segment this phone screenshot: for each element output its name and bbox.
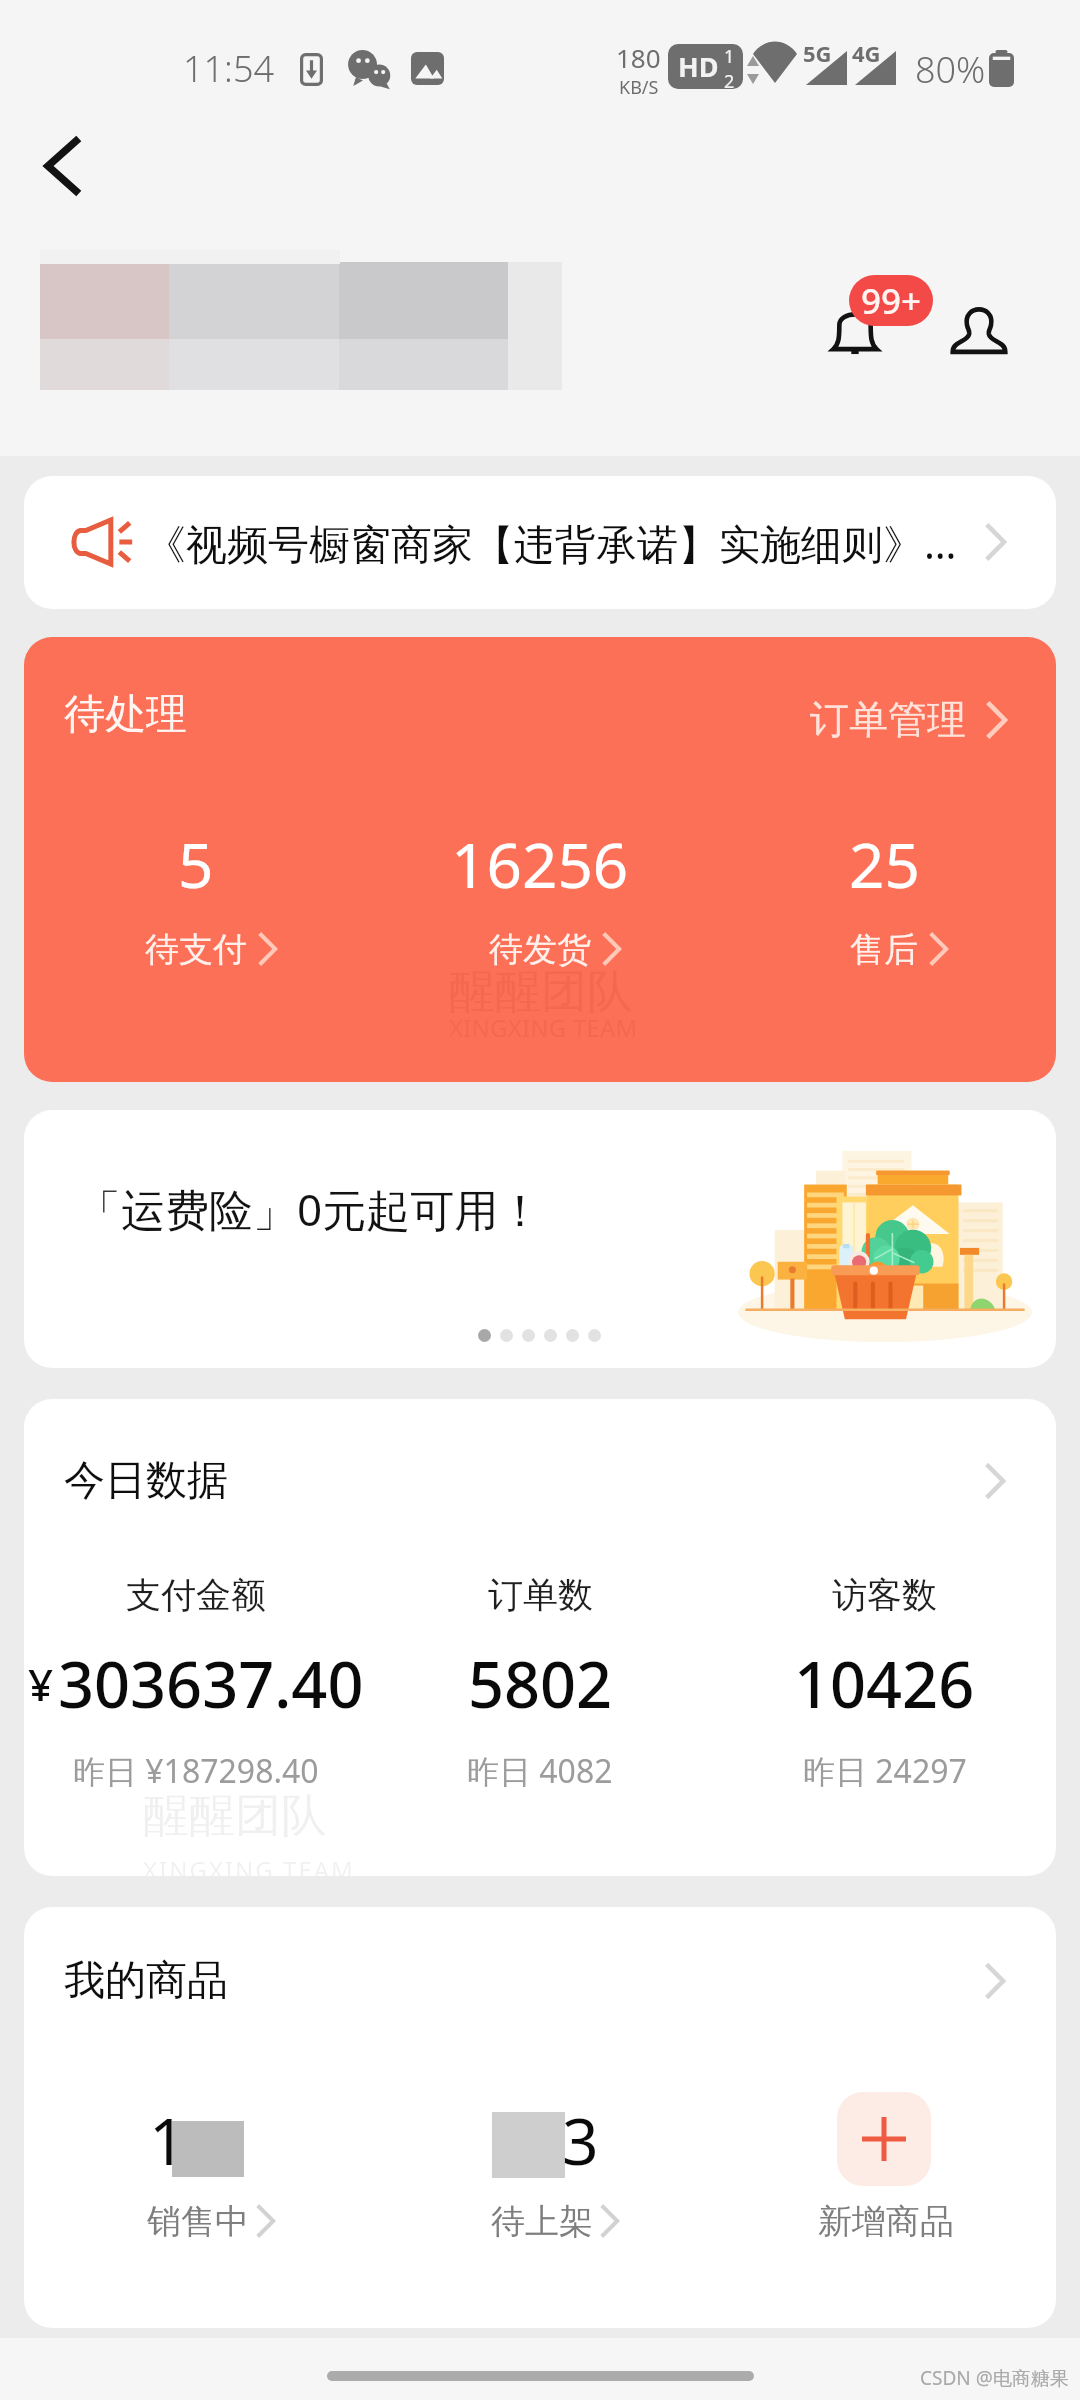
staticText: 订单数 bbox=[488, 1573, 593, 1617]
staticText: ¥ bbox=[28, 1654, 54, 1714]
staticText: 待支付 bbox=[145, 928, 247, 971]
staticText: 16256 bbox=[451, 822, 629, 906]
staticText: 销售中 bbox=[147, 2200, 249, 2243]
button[interactable]: 我的商品 bbox=[64, 1955, 1005, 2007]
button[interactable]: Notifications bbox=[820, 264, 945, 368]
staticText: 昨日 4082 bbox=[467, 1749, 613, 1793]
staticText: 1 bbox=[724, 44, 735, 69]
staticText: 5G bbox=[803, 38, 832, 68]
staticText: 醒醒团队 bbox=[143, 1787, 327, 1845]
staticText: 新增商品 bbox=[818, 2200, 954, 2243]
staticText: 《视频号橱窗商家【违背承诺】实施细则》… bbox=[145, 515, 957, 571]
staticText: 1 bbox=[149, 2097, 186, 2184]
button[interactable]: 《视频号橱窗商家【违背承诺】实施细则》… bbox=[24, 476, 1056, 609]
staticText: 支付金额 bbox=[126, 1573, 266, 1617]
staticText: 4G bbox=[852, 38, 881, 68]
staticText: 303637.40 bbox=[58, 1641, 364, 1727]
staticText: 昨日 24297 bbox=[803, 1749, 967, 1793]
staticText: 180 bbox=[616, 40, 661, 75]
button[interactable]: 「运费险」0元起可用！ bbox=[24, 1110, 1056, 1368]
button[interactable]: Back bbox=[20, 124, 104, 208]
staticText: 待上架 bbox=[491, 2200, 593, 2243]
button[interactable]: 今日数据 bbox=[64, 1455, 1005, 1507]
staticText: 25 bbox=[849, 822, 920, 906]
staticText: 醒醒团队 bbox=[449, 963, 633, 1021]
button[interactable]: 订单管理 bbox=[800, 681, 1017, 758]
staticText: 5802 bbox=[468, 1641, 613, 1727]
staticText: 99+ bbox=[861, 277, 922, 325]
button[interactable]: 16256 bbox=[390, 807, 690, 982]
staticText: 3 bbox=[562, 2097, 599, 2184]
staticText: 待发货 bbox=[489, 928, 591, 971]
staticText: XINGXING TEAM bbox=[143, 1853, 355, 1876]
staticText: 11:54 bbox=[183, 44, 275, 93]
staticText: 售后 bbox=[850, 928, 918, 971]
staticText: KB/S bbox=[619, 75, 659, 100]
button[interactable]: 待上架 bbox=[491, 2195, 651, 2247]
staticText: 订单管理 bbox=[810, 695, 966, 744]
staticText: 待处理 bbox=[64, 689, 187, 741]
staticText: 80% bbox=[915, 45, 986, 94]
staticText: 10426 bbox=[794, 1641, 975, 1727]
staticText: 5 bbox=[178, 822, 214, 906]
button[interactable]: 5 bbox=[46, 807, 346, 982]
staticText: 2 bbox=[724, 69, 735, 89]
staticText: CSDN @电商糖果 bbox=[920, 2365, 1069, 2391]
staticText: HD bbox=[678, 48, 719, 85]
button[interactable]: Profile bbox=[936, 287, 1022, 367]
staticText: 今日数据 bbox=[64, 1455, 228, 1507]
button[interactable]: 25 bbox=[734, 807, 1034, 982]
staticText: 「运费险」0元起可用！ bbox=[77, 1179, 543, 1239]
button[interactable]: 新增商品 bbox=[837, 2092, 931, 2186]
staticText: 我的商品 bbox=[64, 1955, 228, 2007]
staticText: 昨日 ¥187298.40 bbox=[73, 1749, 319, 1793]
staticText: 访客数 bbox=[832, 1573, 937, 1617]
button[interactable]: 销售中 bbox=[147, 2195, 307, 2247]
